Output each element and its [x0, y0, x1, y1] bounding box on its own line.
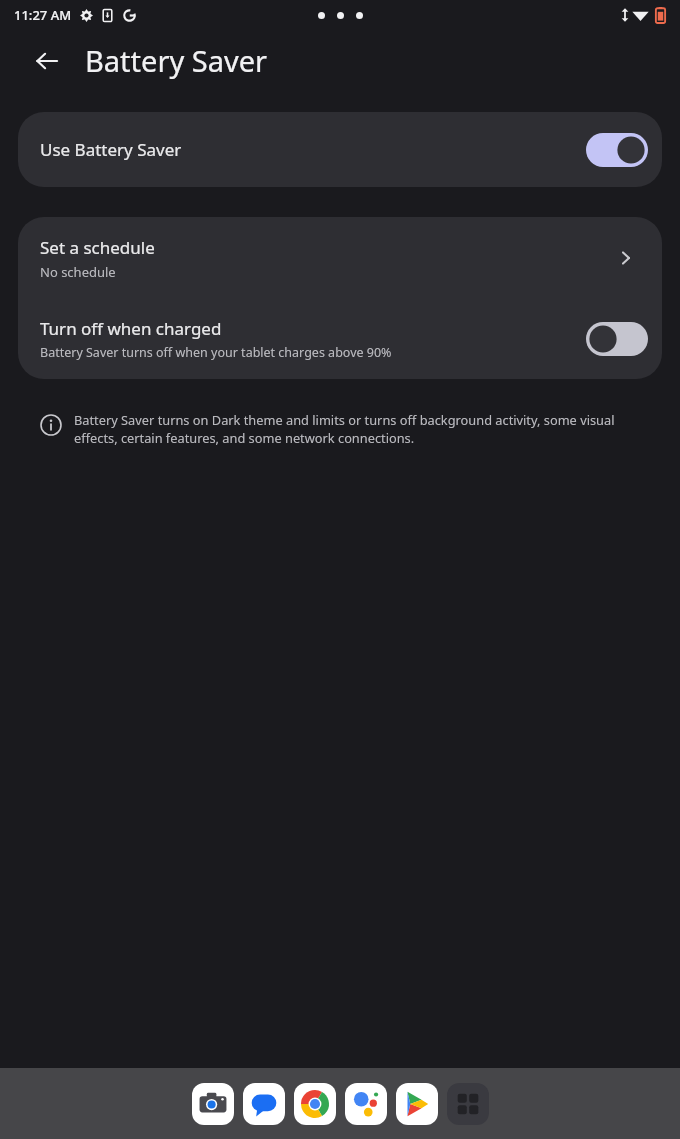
button[interactable]: All apps [447, 1083, 489, 1125]
button[interactable]: On [586, 133, 648, 167]
button[interactable]: Use Battery Saver [18, 112, 662, 187]
button[interactable]: Assistant [345, 1083, 387, 1125]
button[interactable]: Messages [243, 1083, 285, 1125]
button[interactable]: Camera [192, 1083, 234, 1125]
staticText: Battery Saver turns on Dark theme and li… [74, 411, 650, 447]
staticText: Battery Saver turns off when your tablet… [40, 344, 392, 361]
staticText: Set a schedule [40, 236, 155, 259]
button[interactable]: Back [26, 40, 68, 82]
staticText: Battery Saver [85, 41, 267, 80]
staticText: Turn off when charged [40, 317, 222, 340]
button[interactable]: Chrome [294, 1083, 336, 1125]
button[interactable]: Play Store [396, 1083, 438, 1125]
button[interactable]: Turn off when charged [18, 299, 662, 379]
staticText: No schedule [40, 263, 116, 281]
button[interactable]: Off [586, 322, 648, 356]
staticText: Use Battery Saver [40, 138, 182, 161]
button[interactable]: Set a schedule [18, 217, 662, 299]
staticText: 11:27 AM [14, 6, 72, 24]
